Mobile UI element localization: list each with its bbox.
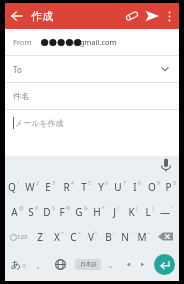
button[interactable]: S bbox=[25, 199, 41, 224]
button[interactable]: Enter bbox=[149, 249, 179, 279]
staticText: U bbox=[114, 180, 122, 194]
button[interactable]: B bbox=[101, 224, 118, 249]
staticText: 2 bbox=[36, 180, 39, 187]
staticText: 日本語 bbox=[80, 261, 97, 268]
staticText: 0 bbox=[173, 180, 176, 187]
staticText: 9 bbox=[157, 180, 160, 187]
button[interactable]: 件名 bbox=[5, 83, 179, 109]
staticText: a bbox=[22, 261, 26, 271]
staticText: @gmail.com bbox=[73, 37, 117, 47]
button[interactable]: M bbox=[135, 224, 152, 249]
staticText: メールを作成 bbox=[15, 118, 64, 128]
button[interactable]: F bbox=[57, 199, 73, 224]
button[interactable]: Cursor right bbox=[135, 249, 149, 279]
staticText: \ bbox=[95, 230, 97, 237]
button[interactable]: Voice input bbox=[159, 158, 173, 172]
button[interactable]: Y bbox=[94, 174, 111, 199]
staticText: ) bbox=[152, 205, 154, 212]
staticText: H bbox=[93, 205, 101, 219]
button[interactable]: メールを作成 bbox=[5, 110, 179, 136]
staticText: - bbox=[44, 230, 46, 237]
button[interactable]: Switch input mode bbox=[5, 249, 31, 279]
staticText: L bbox=[145, 205, 151, 219]
staticText: D bbox=[43, 205, 51, 219]
button[interactable]: Attach file bbox=[122, 6, 142, 26]
button[interactable]: To bbox=[5, 56, 179, 82]
button[interactable]: Z bbox=[32, 224, 50, 249]
staticText: & bbox=[84, 205, 88, 212]
staticText: 作成 bbox=[31, 9, 53, 23]
button[interactable]: U bbox=[111, 174, 128, 199]
button[interactable]: More options bbox=[162, 9, 177, 24]
button[interactable]: O bbox=[145, 174, 162, 199]
staticText: S bbox=[28, 205, 34, 219]
staticText: O bbox=[148, 180, 156, 194]
staticText: From bbox=[13, 37, 32, 47]
staticText: 8 bbox=[138, 180, 141, 187]
button[interactable]: K bbox=[124, 199, 141, 224]
staticText: " bbox=[171, 205, 174, 212]
button[interactable]: I bbox=[128, 174, 145, 199]
button[interactable]: 日本語 bbox=[71, 249, 104, 279]
staticText: B bbox=[105, 230, 112, 244]
button[interactable]: R bbox=[59, 174, 77, 199]
button[interactable]: J bbox=[107, 199, 124, 224]
button[interactable]: Backspace bbox=[152, 224, 179, 249]
staticText: % bbox=[66, 205, 71, 212]
button[interactable]: V bbox=[84, 224, 101, 249]
button[interactable]: Back bbox=[8, 7, 26, 25]
staticText: = bbox=[78, 230, 81, 237]
staticText: F bbox=[59, 205, 65, 219]
staticText: / bbox=[117, 205, 119, 212]
button[interactable]: H bbox=[90, 199, 107, 224]
button[interactable]: Q bbox=[5, 174, 23, 199]
staticText: Z bbox=[37, 230, 43, 244]
other: Show Cc and Bcc bbox=[159, 63, 171, 75]
staticText: V bbox=[88, 230, 94, 244]
staticText: K bbox=[128, 205, 135, 219]
button[interactable]: G bbox=[73, 199, 90, 224]
button[interactable]: Change keyboard bbox=[50, 249, 71, 279]
button[interactable]: Cursor left bbox=[121, 249, 135, 279]
staticText: 1 bbox=[17, 180, 20, 187]
button[interactable]: C bbox=[67, 224, 84, 249]
staticText: Y bbox=[98, 180, 104, 194]
button[interactable]: Symbols bbox=[5, 224, 32, 249]
staticText: 6 bbox=[105, 180, 108, 187]
button[interactable]: D bbox=[41, 199, 57, 224]
button[interactable]: — bbox=[158, 199, 175, 224]
button[interactable]: 、 bbox=[31, 249, 50, 279]
button[interactable]: 。 bbox=[104, 249, 121, 279]
staticText: 7 bbox=[123, 180, 126, 187]
staticText: 4 bbox=[71, 180, 74, 187]
staticText: M bbox=[137, 230, 147, 244]
staticText: 5 bbox=[88, 180, 91, 187]
button[interactable]: W bbox=[23, 174, 41, 199]
staticText: : bbox=[130, 230, 132, 237]
staticText: $ bbox=[52, 205, 55, 212]
staticText: 件名 bbox=[13, 91, 29, 101]
button[interactable]: T bbox=[77, 174, 94, 199]
button[interactable]: N bbox=[118, 224, 135, 249]
staticText: 3 bbox=[52, 180, 55, 187]
button[interactable]: P bbox=[162, 174, 179, 199]
button[interactable]: Send bbox=[142, 6, 162, 26]
staticText: I bbox=[133, 180, 137, 194]
button[interactable]: L bbox=[141, 199, 158, 224]
staticText: To bbox=[13, 64, 22, 75]
staticText: @ bbox=[19, 205, 24, 212]
staticText: — bbox=[160, 205, 170, 219]
staticText: C bbox=[70, 230, 77, 244]
staticText: あ bbox=[11, 258, 22, 271]
staticText: # bbox=[35, 205, 39, 212]
button[interactable]: A bbox=[9, 199, 25, 224]
staticText: * bbox=[102, 205, 105, 212]
button[interactable]: E bbox=[41, 174, 59, 199]
button[interactable]: From bbox=[5, 29, 179, 55]
staticText: J bbox=[113, 205, 116, 219]
staticText: 、 bbox=[36, 259, 45, 270]
staticText: E bbox=[45, 180, 51, 194]
button[interactable]: X bbox=[50, 224, 67, 249]
staticText: T bbox=[81, 180, 87, 194]
staticText: A bbox=[11, 205, 18, 219]
